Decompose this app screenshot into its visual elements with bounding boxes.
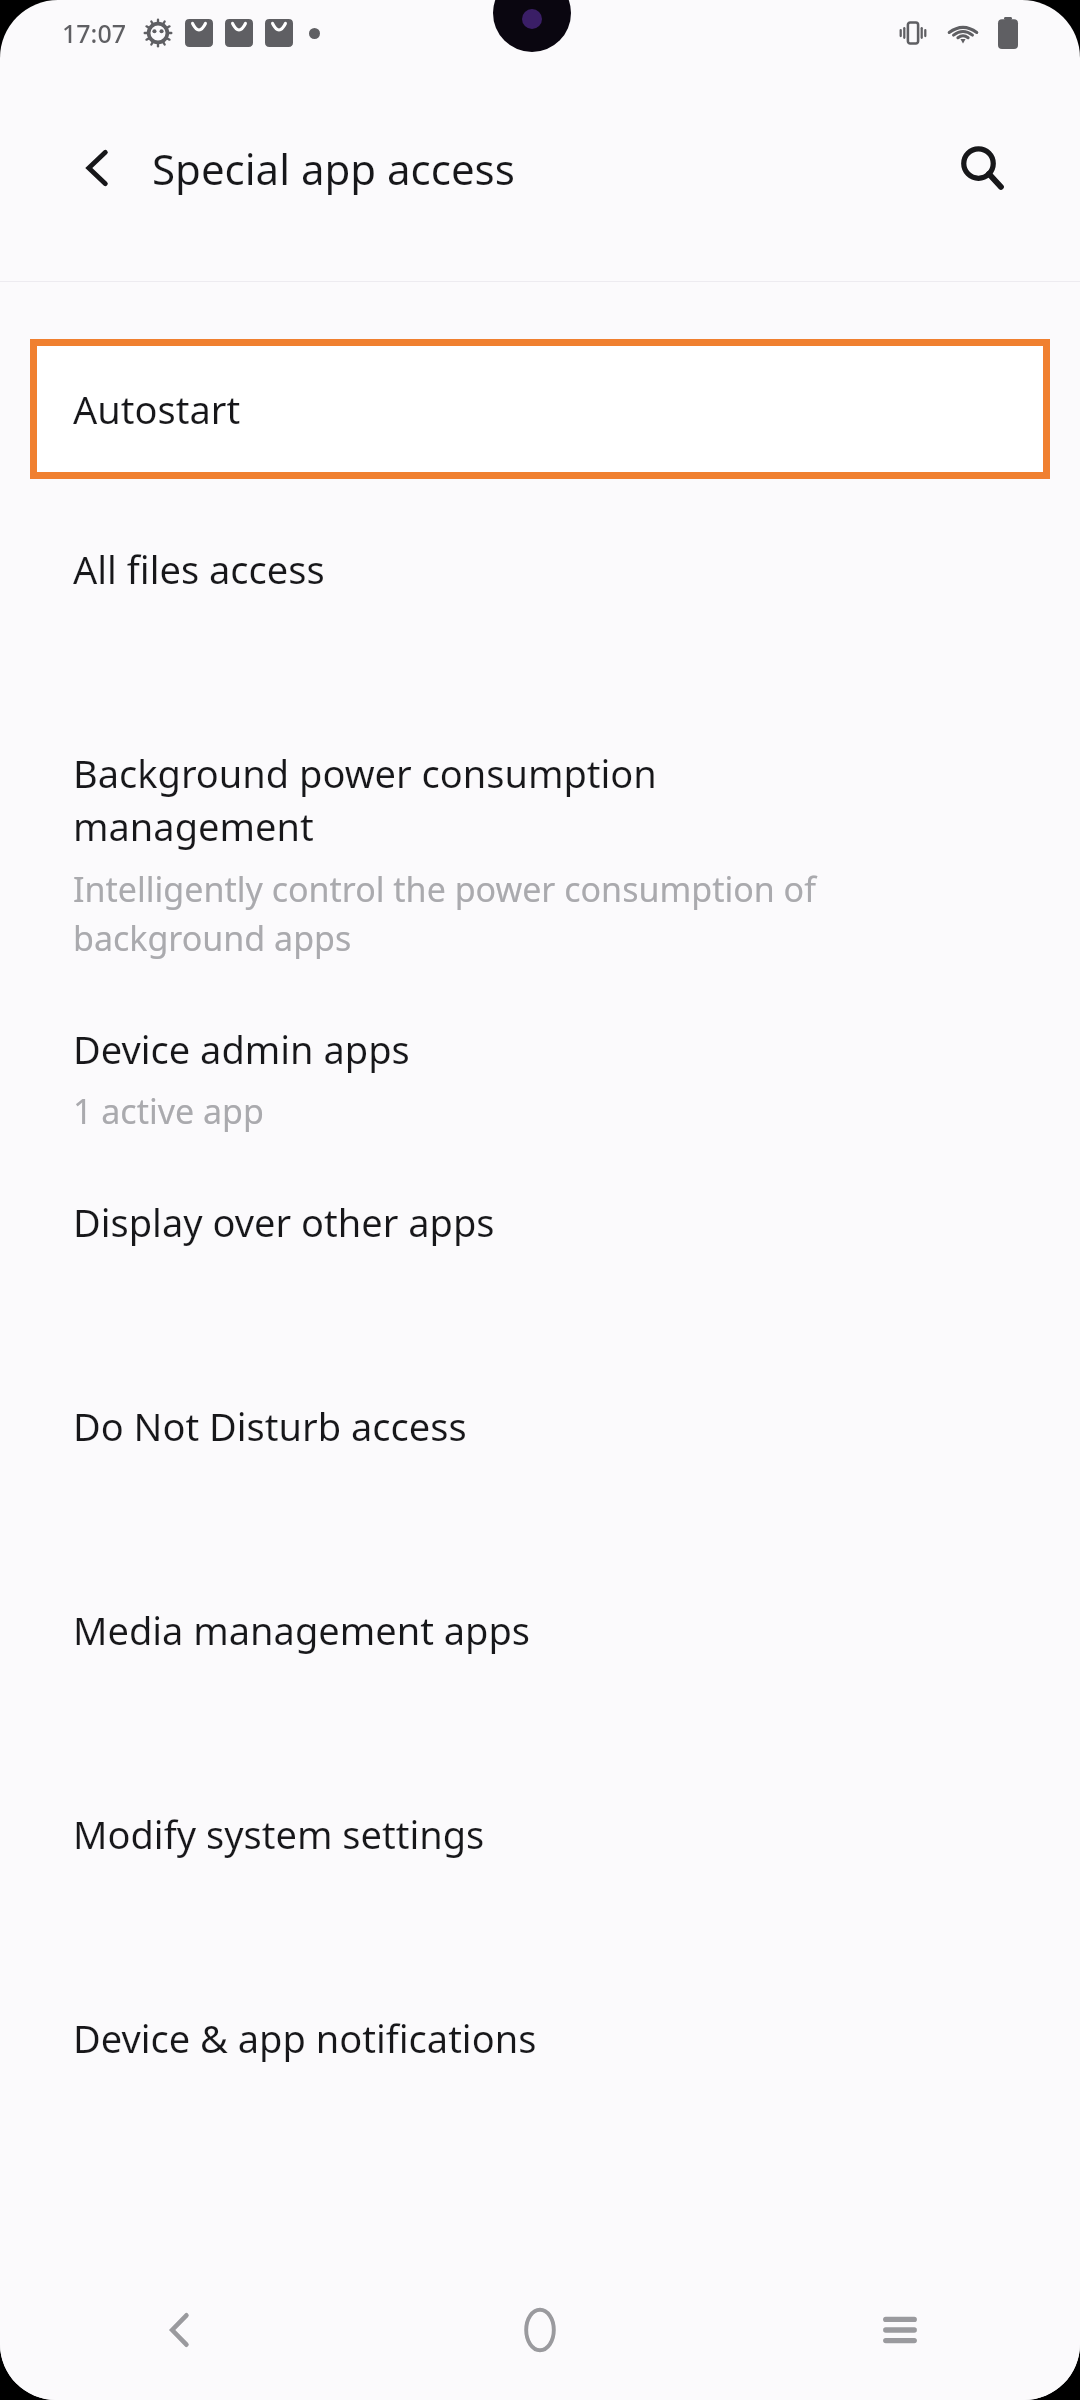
button[interactable]: Display over other apps [0,1196,1080,1248]
staticText: Intelligently control the power consumpt… [73,866,816,961]
staticText: Do Not Disturb access [73,1400,467,1452]
staticText: Media management apps [73,1604,531,1656]
staticText: Device & app notifications [73,2012,537,2064]
staticText: 1 active app [73,1088,264,1134]
staticText: Background power consumption management [73,747,657,853]
button[interactable]: Media management apps [0,1604,1080,1656]
button[interactable]: Modify system settings [0,1808,1080,1860]
staticText: Modify system settings [73,1808,485,1860]
staticText: Autostart [73,383,241,435]
button[interactable]: Do Not Disturb access [0,1400,1080,1452]
button[interactable]: Autostart [37,346,1043,472]
staticText: Device admin apps [73,1023,410,1075]
button[interactable]: Back [52,122,144,214]
button[interactable]: Device admin apps [0,1023,1080,1134]
staticText: 17:07 [62,16,127,50]
button[interactable]: All files access [0,543,1080,595]
button[interactable]: Home [360,2282,720,2378]
button[interactable]: Background power consumption management [0,747,1080,961]
staticText: All files access [73,543,325,595]
staticText: Display over other apps [73,1196,495,1248]
button[interactable]: Device & app notifications [0,2012,1080,2064]
button[interactable]: Back [0,2282,360,2378]
button[interactable]: Search [936,122,1028,214]
button[interactable]: Recent apps [720,2282,1080,2378]
staticText: Special app access [152,140,515,197]
